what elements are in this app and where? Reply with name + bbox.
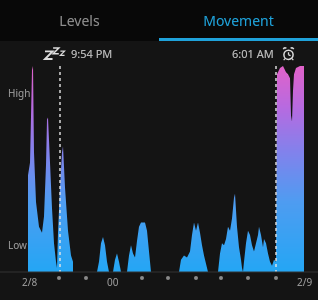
staticText: 6:01 AM xyxy=(232,46,274,61)
staticText: 2/8 xyxy=(22,275,38,289)
other: Fell asleep xyxy=(44,47,65,60)
staticText: Low xyxy=(8,238,27,252)
staticText: 00 xyxy=(107,275,119,289)
button[interactable]: Movement xyxy=(159,0,318,41)
button[interactable]: Levels xyxy=(0,0,159,41)
staticText: Levels xyxy=(59,11,100,30)
staticText: Movement xyxy=(203,11,274,30)
staticText: 2/9 xyxy=(297,275,313,289)
staticText: 9:54 PM xyxy=(71,46,113,61)
other: Alarm xyxy=(282,47,295,60)
staticText: High xyxy=(8,86,31,100)
